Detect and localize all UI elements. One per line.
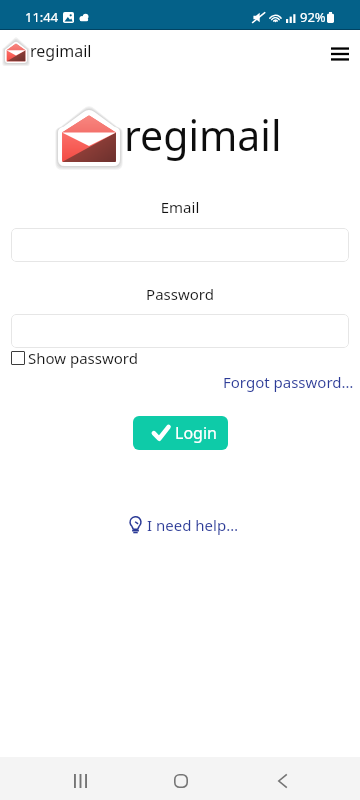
button[interactable]: Forgot password… — [223, 372, 354, 392]
button[interactable] — [11, 228, 349, 262]
staticText: 11:44 — [25, 8, 59, 26]
staticText: regimail — [124, 107, 282, 163]
button[interactable] — [11, 314, 349, 348]
button[interactable]: I need help… — [129, 511, 238, 531]
staticText: 92% — [300, 8, 326, 26]
button[interactable]: Show password — [11, 348, 138, 368]
staticText: Password — [0, 284, 360, 304]
button[interactable]: Home — [159, 764, 203, 797]
button[interactable]: Recent apps — [58, 764, 102, 797]
staticText: Show password — [28, 348, 138, 368]
staticText: Login — [175, 422, 217, 444]
staticText: Email — [0, 197, 360, 217]
staticText: I need help… — [147, 515, 238, 535]
staticText: regimail — [30, 40, 92, 62]
button[interactable]: Login — [133, 416, 228, 450]
button[interactable]: Menu — [323, 37, 357, 71]
button[interactable]: Back — [260, 764, 304, 797]
